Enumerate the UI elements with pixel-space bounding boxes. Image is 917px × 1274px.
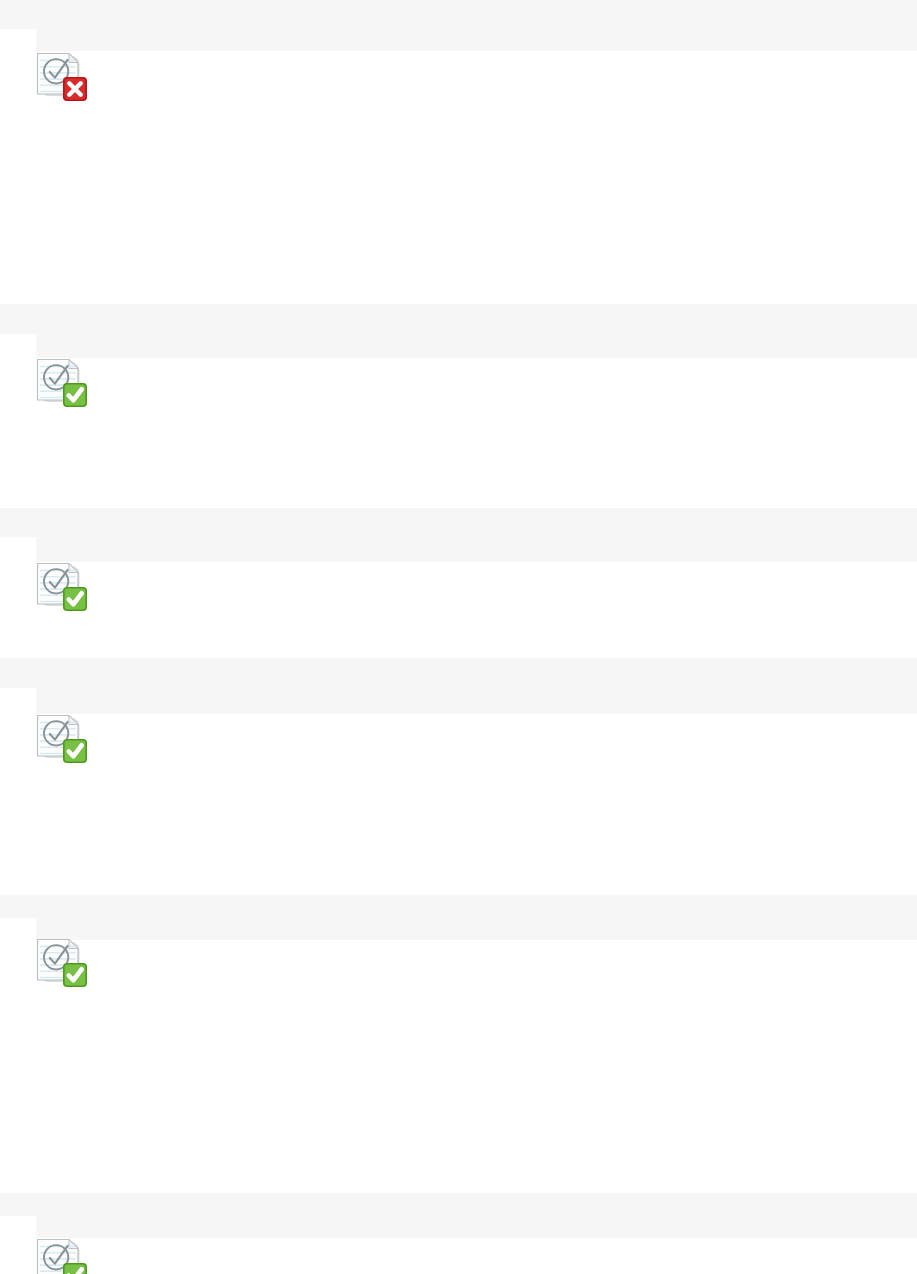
button[interactable]: Test failed: [36, 52, 88, 102]
button[interactable]: Test passed: [36, 938, 88, 988]
button[interactable]: Test passed: [36, 714, 88, 764]
button[interactable]: Test passed: [36, 358, 88, 408]
button[interactable]: Test passed: [36, 1238, 88, 1274]
button[interactable]: Test passed: [36, 562, 88, 612]
